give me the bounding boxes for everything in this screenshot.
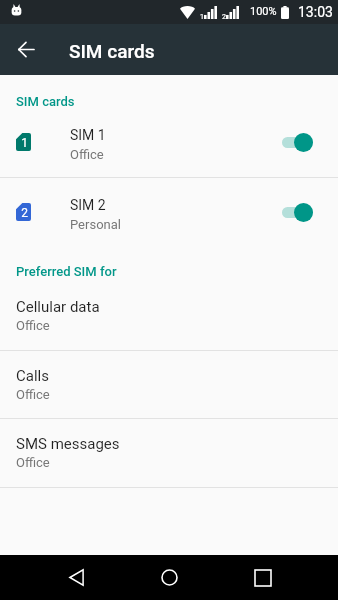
staticText: 13:03 <box>298 4 333 20</box>
staticText: Preferred SIM for <box>16 264 117 279</box>
button[interactable]: Enable SIM <box>282 133 314 152</box>
staticText: Office <box>16 318 50 333</box>
staticText: Office <box>16 455 50 470</box>
staticText: Office <box>70 147 104 162</box>
button[interactable]: Calls <box>0 351 338 418</box>
staticText: SIM 1 <box>70 127 106 143</box>
staticText: Office <box>16 387 50 402</box>
staticText: 1 <box>200 13 204 21</box>
staticText: 2 <box>21 206 28 220</box>
button[interactable]: SMS messages <box>0 419 338 487</box>
staticText: 2 <box>222 13 226 21</box>
staticText: SIM cards <box>69 40 155 62</box>
button[interactable]: Enable SIM <box>282 203 314 222</box>
button[interactable]: Navigate up <box>0 24 51 75</box>
staticText: Calls <box>16 367 49 385</box>
staticText: SIM cards <box>16 94 75 109</box>
staticText: Cellular data <box>16 298 100 316</box>
button[interactable]: 1 <box>0 108 338 177</box>
button[interactable]: Back <box>54 555 98 600</box>
staticText: SMS messages <box>16 435 120 453</box>
button[interactable]: Recent apps <box>241 555 285 600</box>
button[interactable]: Home <box>147 555 191 600</box>
staticText: SIM 2 <box>70 197 106 213</box>
staticText: 1 <box>21 136 28 150</box>
staticText: 100% <box>250 5 277 18</box>
staticText: Personal <box>70 217 121 232</box>
button[interactable]: Cellular data <box>0 282 338 350</box>
button[interactable]: 2 <box>0 178 338 247</box>
